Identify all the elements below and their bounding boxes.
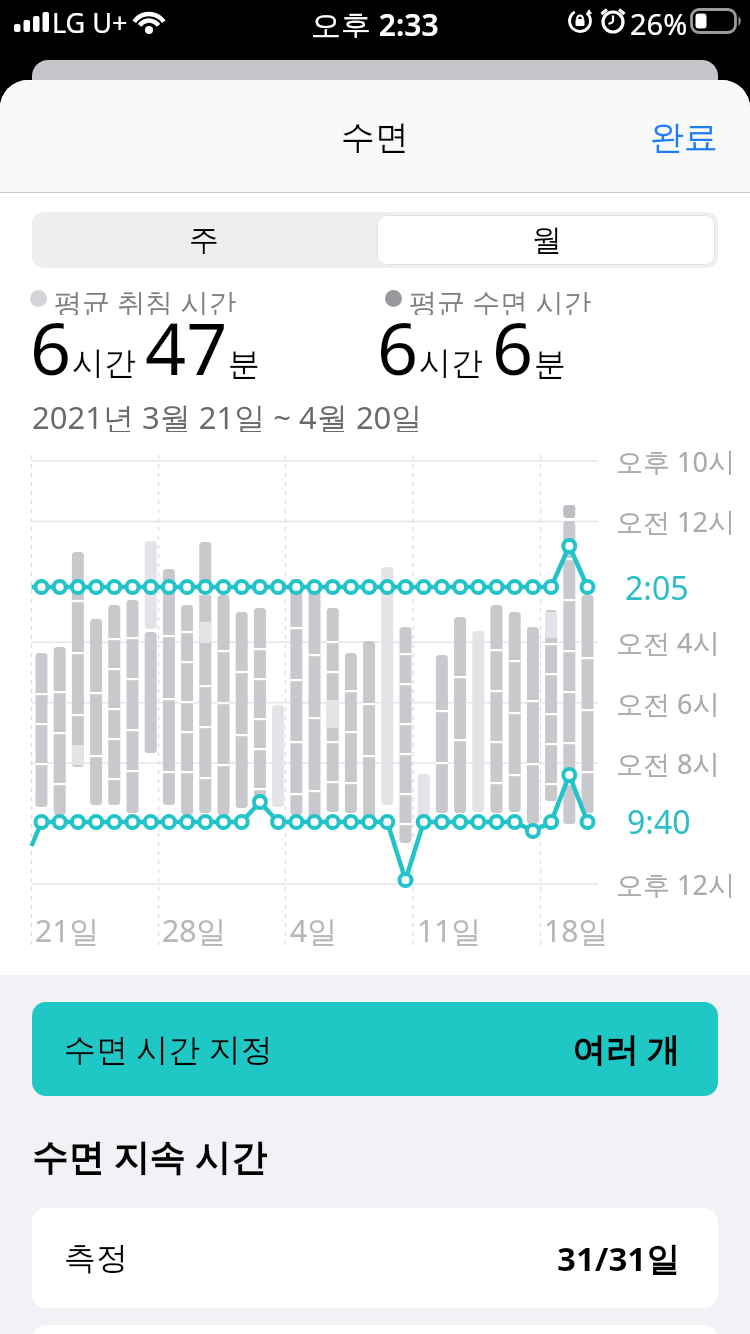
staticText: 월: [532, 221, 562, 259]
staticText: 2:05: [625, 566, 689, 606]
staticText: 오전 6시: [616, 685, 720, 721]
staticText: 오후 12시: [616, 866, 735, 902]
staticText: 평균 수면 시간: [409, 283, 592, 315]
staticText: 11일: [417, 910, 482, 946]
staticText: 26%: [630, 4, 688, 38]
staticText: 수면: [341, 116, 409, 159]
staticText: 시간: [72, 340, 145, 384]
staticText: 분: [534, 344, 566, 384]
staticText: 여러 개: [572, 1027, 680, 1072]
staticText: 6: [30, 298, 72, 396]
staticText: 수면 시간 지정: [64, 1027, 273, 1071]
staticText: 21일: [35, 910, 100, 946]
staticText: 18일: [544, 910, 609, 946]
staticText: 2021년 3월 21일 ~ 4월 20일: [32, 396, 423, 432]
button[interactable]: 수면 시간 지정: [32, 1002, 718, 1096]
staticText: 평균 취침 시간: [54, 283, 237, 315]
staticText: 오후 10시: [616, 443, 735, 479]
staticText: 수면 지속 시간: [32, 1132, 267, 1178]
staticText: 시간: [419, 340, 492, 384]
button[interactable]: 완료: [630, 114, 718, 160]
staticText: 47: [145, 298, 228, 396]
staticText: 4일: [290, 910, 338, 946]
button[interactable]: 월: [375, 212, 718, 268]
staticText: 오전 12시: [616, 503, 735, 539]
staticText: 28일: [162, 910, 227, 946]
staticText: 오전 8시: [616, 745, 720, 781]
staticText: 주: [189, 221, 219, 259]
staticText: 오전 4시: [616, 624, 720, 660]
button[interactable]: 주: [32, 212, 375, 268]
staticText: 6: [492, 298, 534, 396]
staticText: 분: [228, 344, 260, 384]
staticText: 완료: [650, 116, 718, 159]
button[interactable]: 측정: [32, 1208, 718, 1308]
staticText: LG U+: [52, 4, 128, 38]
staticText: 9:40: [627, 800, 691, 840]
staticText: 측정: [64, 1238, 128, 1278]
staticText: 31/31일: [557, 1236, 680, 1281]
staticText: 오후 2:33: [311, 4, 439, 38]
staticText: 6: [377, 298, 419, 396]
